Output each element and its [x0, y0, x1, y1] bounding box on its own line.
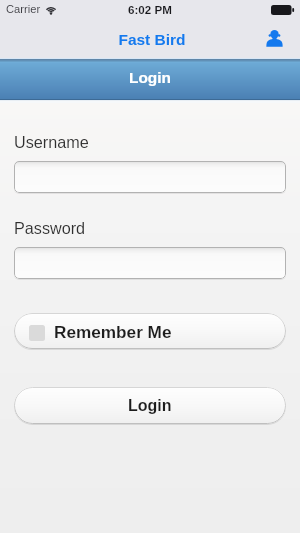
button[interactable]: Remember Me: [14, 313, 286, 349]
staticText: Login: [0, 69, 300, 86]
button[interactable]: [14, 161, 286, 193]
button[interactable]: Account: [261, 25, 287, 51]
staticText: Remember Me: [54, 322, 172, 341]
button[interactable]: Login: [14, 387, 286, 424]
staticText: Username: [14, 133, 89, 151]
staticText: Login: [128, 397, 172, 415]
staticText: Carrier: [6, 3, 41, 16]
staticText: Fast Bird: [2, 31, 300, 48]
staticText: 6:02 PM: [128, 3, 172, 16]
staticText: Password: [14, 219, 86, 237]
button[interactable]: [14, 247, 286, 279]
